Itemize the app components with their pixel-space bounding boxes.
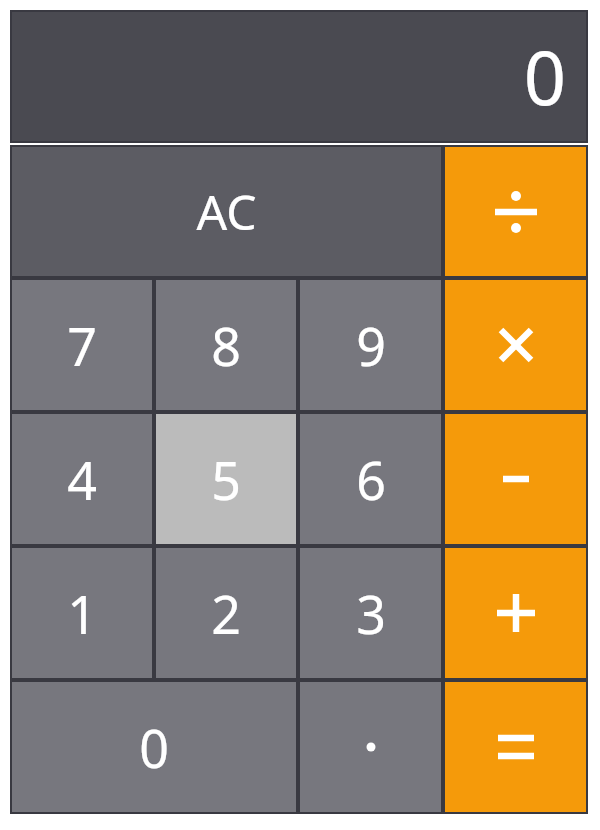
staticText: 7 — [67, 310, 97, 381]
button[interactable]: 4 — [10, 412, 154, 546]
staticText: AC — [196, 179, 257, 244]
staticText: 0 — [139, 712, 169, 783]
staticText: 8 — [211, 310, 241, 381]
button[interactable]: Equals — [443, 680, 588, 814]
button[interactable]: 9 — [298, 278, 443, 412]
staticText: 9 — [356, 310, 386, 381]
button[interactable]: 1 — [10, 546, 154, 680]
staticText: 5 — [211, 444, 241, 515]
button[interactable]: 3 — [298, 546, 443, 680]
button[interactable]: Divide — [443, 145, 588, 278]
staticText: 6 — [356, 444, 386, 515]
button[interactable]: 0 — [10, 680, 298, 814]
staticText: 0 — [523, 26, 566, 127]
button[interactable]: Decimal point — [298, 680, 443, 814]
button[interactable]: AC — [10, 145, 443, 278]
button[interactable]: Subtract — [443, 412, 588, 546]
button[interactable]: 6 — [298, 412, 443, 546]
button[interactable]: Add — [443, 546, 588, 680]
staticText: 3 — [356, 578, 386, 649]
button[interactable]: Multiply — [443, 278, 588, 412]
button[interactable]: 5 — [154, 412, 298, 546]
staticText: 1 — [67, 578, 97, 649]
staticText: 4 — [67, 444, 97, 515]
button[interactable]: 8 — [154, 278, 298, 412]
button[interactable]: 7 — [10, 278, 154, 412]
staticText: 2 — [211, 578, 241, 649]
button[interactable]: 2 — [154, 546, 298, 680]
